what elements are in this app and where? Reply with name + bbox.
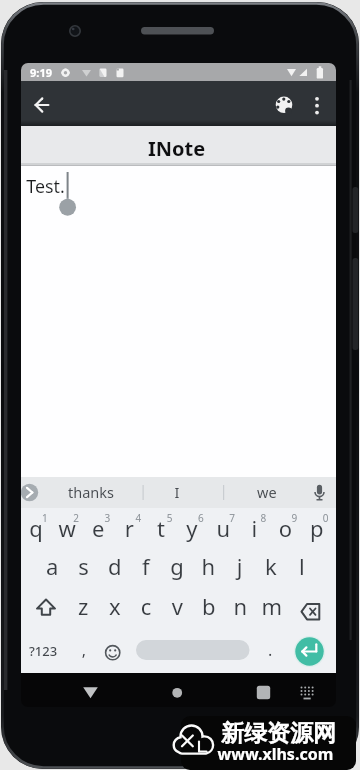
button[interactable]: [241, 517, 272, 556]
button[interactable]: [21, 166, 336, 477]
button[interactable]: [269, 90, 299, 120]
button[interactable]: [131, 634, 254, 673]
button[interactable]: [225, 477, 297, 508]
button[interactable]: [115, 517, 146, 556]
button[interactable]: [288, 634, 333, 673]
button[interactable]: [162, 556, 193, 595]
button[interactable]: [147, 517, 178, 556]
button[interactable]: [131, 556, 162, 595]
button[interactable]: [130, 595, 161, 634]
button[interactable]: [255, 634, 286, 673]
button[interactable]: [254, 595, 285, 634]
button[interactable]: [292, 595, 336, 634]
button[interactable]: [303, 90, 331, 120]
button[interactable]: [27, 90, 57, 120]
button[interactable]: [223, 595, 254, 634]
button[interactable]: [37, 556, 68, 595]
button[interactable]: [68, 634, 99, 673]
button[interactable]: [304, 517, 335, 556]
button[interactable]: [68, 556, 99, 595]
button[interactable]: [21, 595, 69, 634]
button[interactable]: [21, 477, 45, 508]
button[interactable]: [257, 556, 288, 595]
button[interactable]: [99, 556, 130, 595]
button[interactable]: [225, 556, 256, 595]
button[interactable]: [21, 634, 65, 673]
button[interactable]: [145, 477, 219, 508]
button[interactable]: [178, 517, 209, 556]
button[interactable]: [67, 673, 115, 707]
button[interactable]: [273, 517, 304, 556]
button[interactable]: [99, 595, 130, 634]
button[interactable]: [45, 477, 142, 508]
button[interactable]: [192, 595, 223, 634]
button[interactable]: [240, 673, 288, 707]
button[interactable]: [300, 477, 336, 508]
button[interactable]: [288, 556, 319, 595]
button[interactable]: [194, 556, 225, 595]
button[interactable]: [210, 517, 241, 556]
button[interactable]: [99, 634, 130, 673]
button[interactable]: [68, 595, 99, 634]
button[interactable]: [283, 673, 331, 707]
button[interactable]: [21, 517, 52, 556]
button[interactable]: [153, 673, 201, 707]
button[interactable]: [84, 517, 115, 556]
button[interactable]: [161, 595, 192, 634]
button[interactable]: [52, 517, 83, 556]
